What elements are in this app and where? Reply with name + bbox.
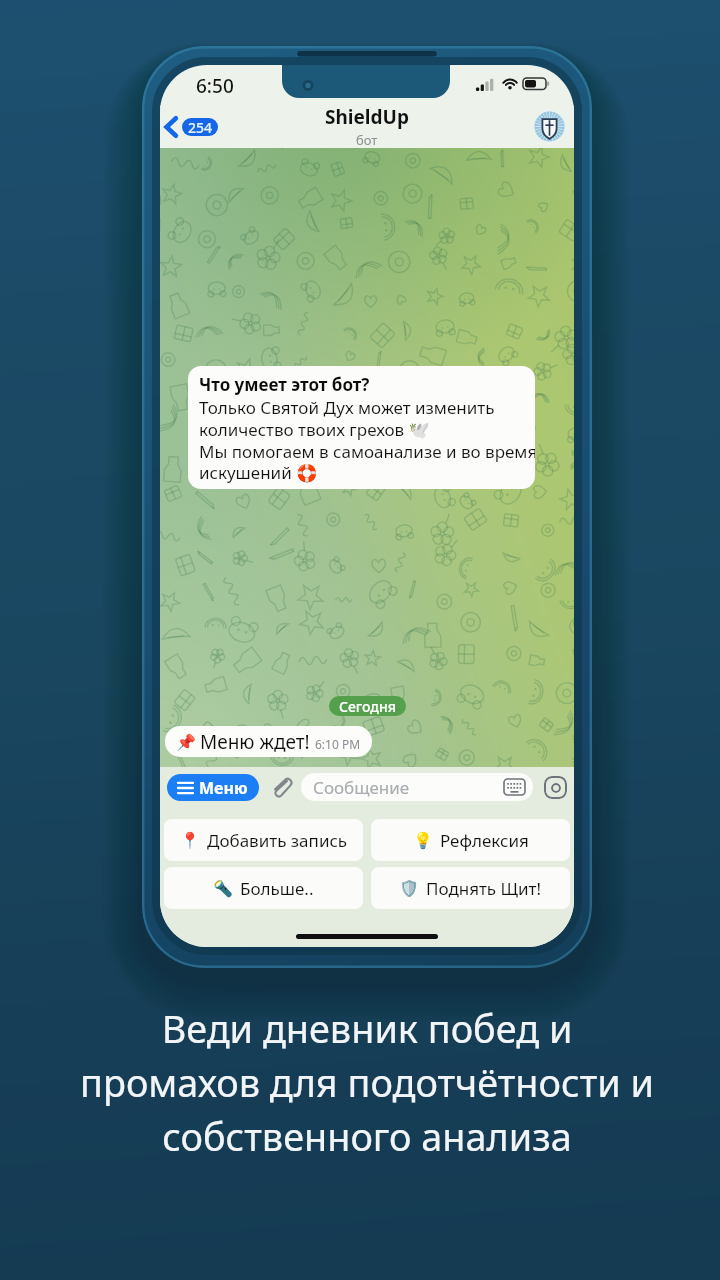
staticText: 📌 <box>176 733 196 752</box>
staticText: Сообщение <box>313 776 410 799</box>
staticText: 6:50 <box>196 73 234 99</box>
button[interactable]: Меню <box>167 774 259 801</box>
staticText: Меню ждет! <box>200 729 310 755</box>
button[interactable]: Attach file <box>270 776 293 799</box>
button[interactable]: Что умеет этот бот? <box>188 366 535 489</box>
button[interactable]: 💡 <box>371 819 570 861</box>
staticText: 💡 <box>413 831 433 850</box>
staticText: Поднять Щит! <box>426 877 542 900</box>
staticText: Что умеет этот бот? <box>199 373 370 396</box>
button[interactable]: 📌 <box>165 726 372 757</box>
staticText: бот <box>356 131 378 147</box>
staticText: Сегодня <box>339 697 396 716</box>
staticText: Больше.. <box>240 877 314 900</box>
staticText: 6:10 PM <box>315 736 361 752</box>
button[interactable]: Сообщение <box>301 773 533 801</box>
button[interactable]: 🛡 <box>371 867 570 909</box>
button[interactable]: 254 <box>162 112 220 142</box>
button[interactable]: Сегодня <box>329 696 406 716</box>
staticText: 254 <box>188 118 213 136</box>
staticText: 🔦 <box>213 879 233 898</box>
staticText: Рефлексия <box>440 829 529 852</box>
button[interactable]: Voice message <box>544 776 567 799</box>
button[interactable]: 📍 <box>164 819 363 861</box>
staticText: ShieldUp <box>325 104 409 130</box>
staticText: 📍 <box>180 831 200 850</box>
button[interactable]: 🔦 <box>164 867 363 909</box>
staticText: Добавить запись <box>207 829 348 852</box>
staticText: Только Святой Дух может изменить количес… <box>199 396 535 484</box>
button[interactable]: Profile <box>533 110 566 143</box>
staticText: Меню <box>199 777 248 799</box>
staticText: Веди дневник побед и промахов для подотч… <box>80 1003 654 1162</box>
staticText: 🛡 <box>399 879 419 898</box>
